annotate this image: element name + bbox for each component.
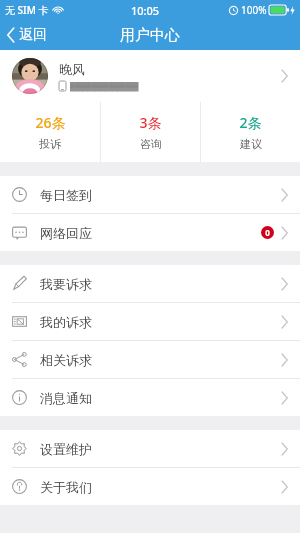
button[interactable]: 消息通知 (0, 379, 300, 416)
staticText: 我要诉求 (40, 276, 92, 292)
button[interactable]: 每日签到 (0, 176, 300, 213)
staticText: 每日签到 (40, 187, 92, 203)
staticText: 2条 (239, 113, 262, 132)
button[interactable]: 3条 (101, 102, 200, 162)
staticText: 用户中心 (120, 26, 180, 45)
staticText: 消息通知 (40, 390, 92, 406)
staticText: 晚风 (59, 61, 85, 77)
staticText: 26条 (35, 113, 66, 132)
button[interactable]: 设置维护 (0, 430, 300, 467)
staticText: 建议 (240, 137, 262, 151)
staticText: 设置维护 (40, 441, 92, 457)
button[interactable]: 我的诉求 (0, 303, 300, 340)
staticText: 关于我们 (40, 479, 92, 495)
staticText: 3条 (139, 113, 162, 132)
staticText: 咨询 (140, 137, 162, 151)
staticText: 返回 (19, 26, 47, 44)
button[interactable]: 返回 (0, 23, 57, 47)
staticText: 100% (241, 3, 267, 17)
staticText: 网络回应 (40, 225, 92, 241)
staticText: 相关诉求 (40, 352, 92, 368)
button[interactable]: 网络回应 (0, 214, 300, 251)
staticText: 投诉 (39, 137, 61, 151)
button[interactable]: 晚风 (0, 50, 300, 102)
staticText: 无 SIM 卡 (5, 3, 49, 17)
button[interactable]: 2条 (201, 102, 300, 162)
button[interactable]: 我要诉求 (0, 265, 300, 302)
staticText: 0 (265, 227, 270, 238)
staticText: 我的诉求 (40, 314, 92, 330)
button[interactable]: 相关诉求 (0, 341, 300, 378)
staticText: 10:05 (131, 3, 160, 18)
button[interactable]: 关于我们 (0, 468, 300, 505)
button[interactable]: 26条 (0, 102, 100, 162)
